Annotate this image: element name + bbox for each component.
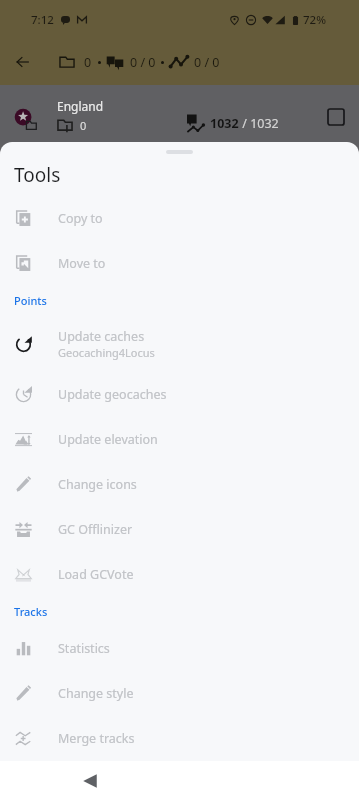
staticText: Load GCVote [58,566,134,583]
button[interactable]: Merge tracks [0,716,359,761]
staticText: 1032 [210,115,239,132]
button[interactable]: Back [70,761,110,800]
staticText: Update caches [58,328,145,345]
button[interactable]: England [0,85,359,142]
button[interactable]: Change icons [0,462,359,507]
button[interactable]: Back [0,39,45,85]
staticText: Copy to [58,210,103,227]
staticText: Points [14,293,47,308]
staticText: Geocaching4Locus [58,345,155,360]
button[interactable]: Update elevation [0,417,359,462]
staticText: Merge tracks [58,730,135,747]
staticText: 7:12 [31,12,54,28]
staticText: Tools [14,162,61,188]
staticText: Statistics [58,640,110,657]
staticText: Change icons [58,476,137,493]
staticText: 0 [80,118,87,133]
staticText: GC Offlinizer [58,521,133,538]
staticText: / 1032 [239,115,279,132]
staticText: Update geocaches [58,386,167,403]
staticText: 0 / 0 [130,54,156,71]
staticText: 0 / 0 [194,54,220,71]
button[interactable]: Move to [0,241,359,286]
staticText: Move to [58,255,106,272]
button[interactable]: Update geocaches [0,372,359,417]
button[interactable]: Change style [0,671,359,716]
staticText: 0 [84,54,92,71]
button[interactable]: Load GCVote [0,552,359,597]
button[interactable]: Copy to [0,196,359,241]
button[interactable]: Statistics [0,626,359,671]
staticText: Change style [58,685,134,702]
button[interactable]: Select all [320,101,352,133]
staticText: Update elevation [58,431,158,448]
button[interactable]: Update caches [0,313,359,375]
staticText: 72% [303,12,326,28]
staticText: England [57,98,104,114]
staticText: Tracks [14,604,48,619]
button[interactable]: GC Offlinizer [0,507,359,552]
